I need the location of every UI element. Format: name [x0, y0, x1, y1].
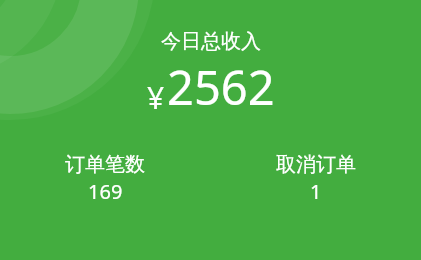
- staticText: 今日总收入: [161, 29, 261, 54]
- staticText: 2562: [167, 55, 275, 119]
- staticText: 订单笔数: [65, 152, 145, 177]
- button[interactable]: 取消订单: [210, 152, 421, 205]
- staticText: 取消订单: [276, 152, 356, 177]
- staticText: 1: [310, 178, 322, 205]
- staticText: ¥: [147, 77, 165, 118]
- staticText: 169: [88, 178, 123, 205]
- button[interactable]: 订单笔数: [0, 152, 210, 205]
